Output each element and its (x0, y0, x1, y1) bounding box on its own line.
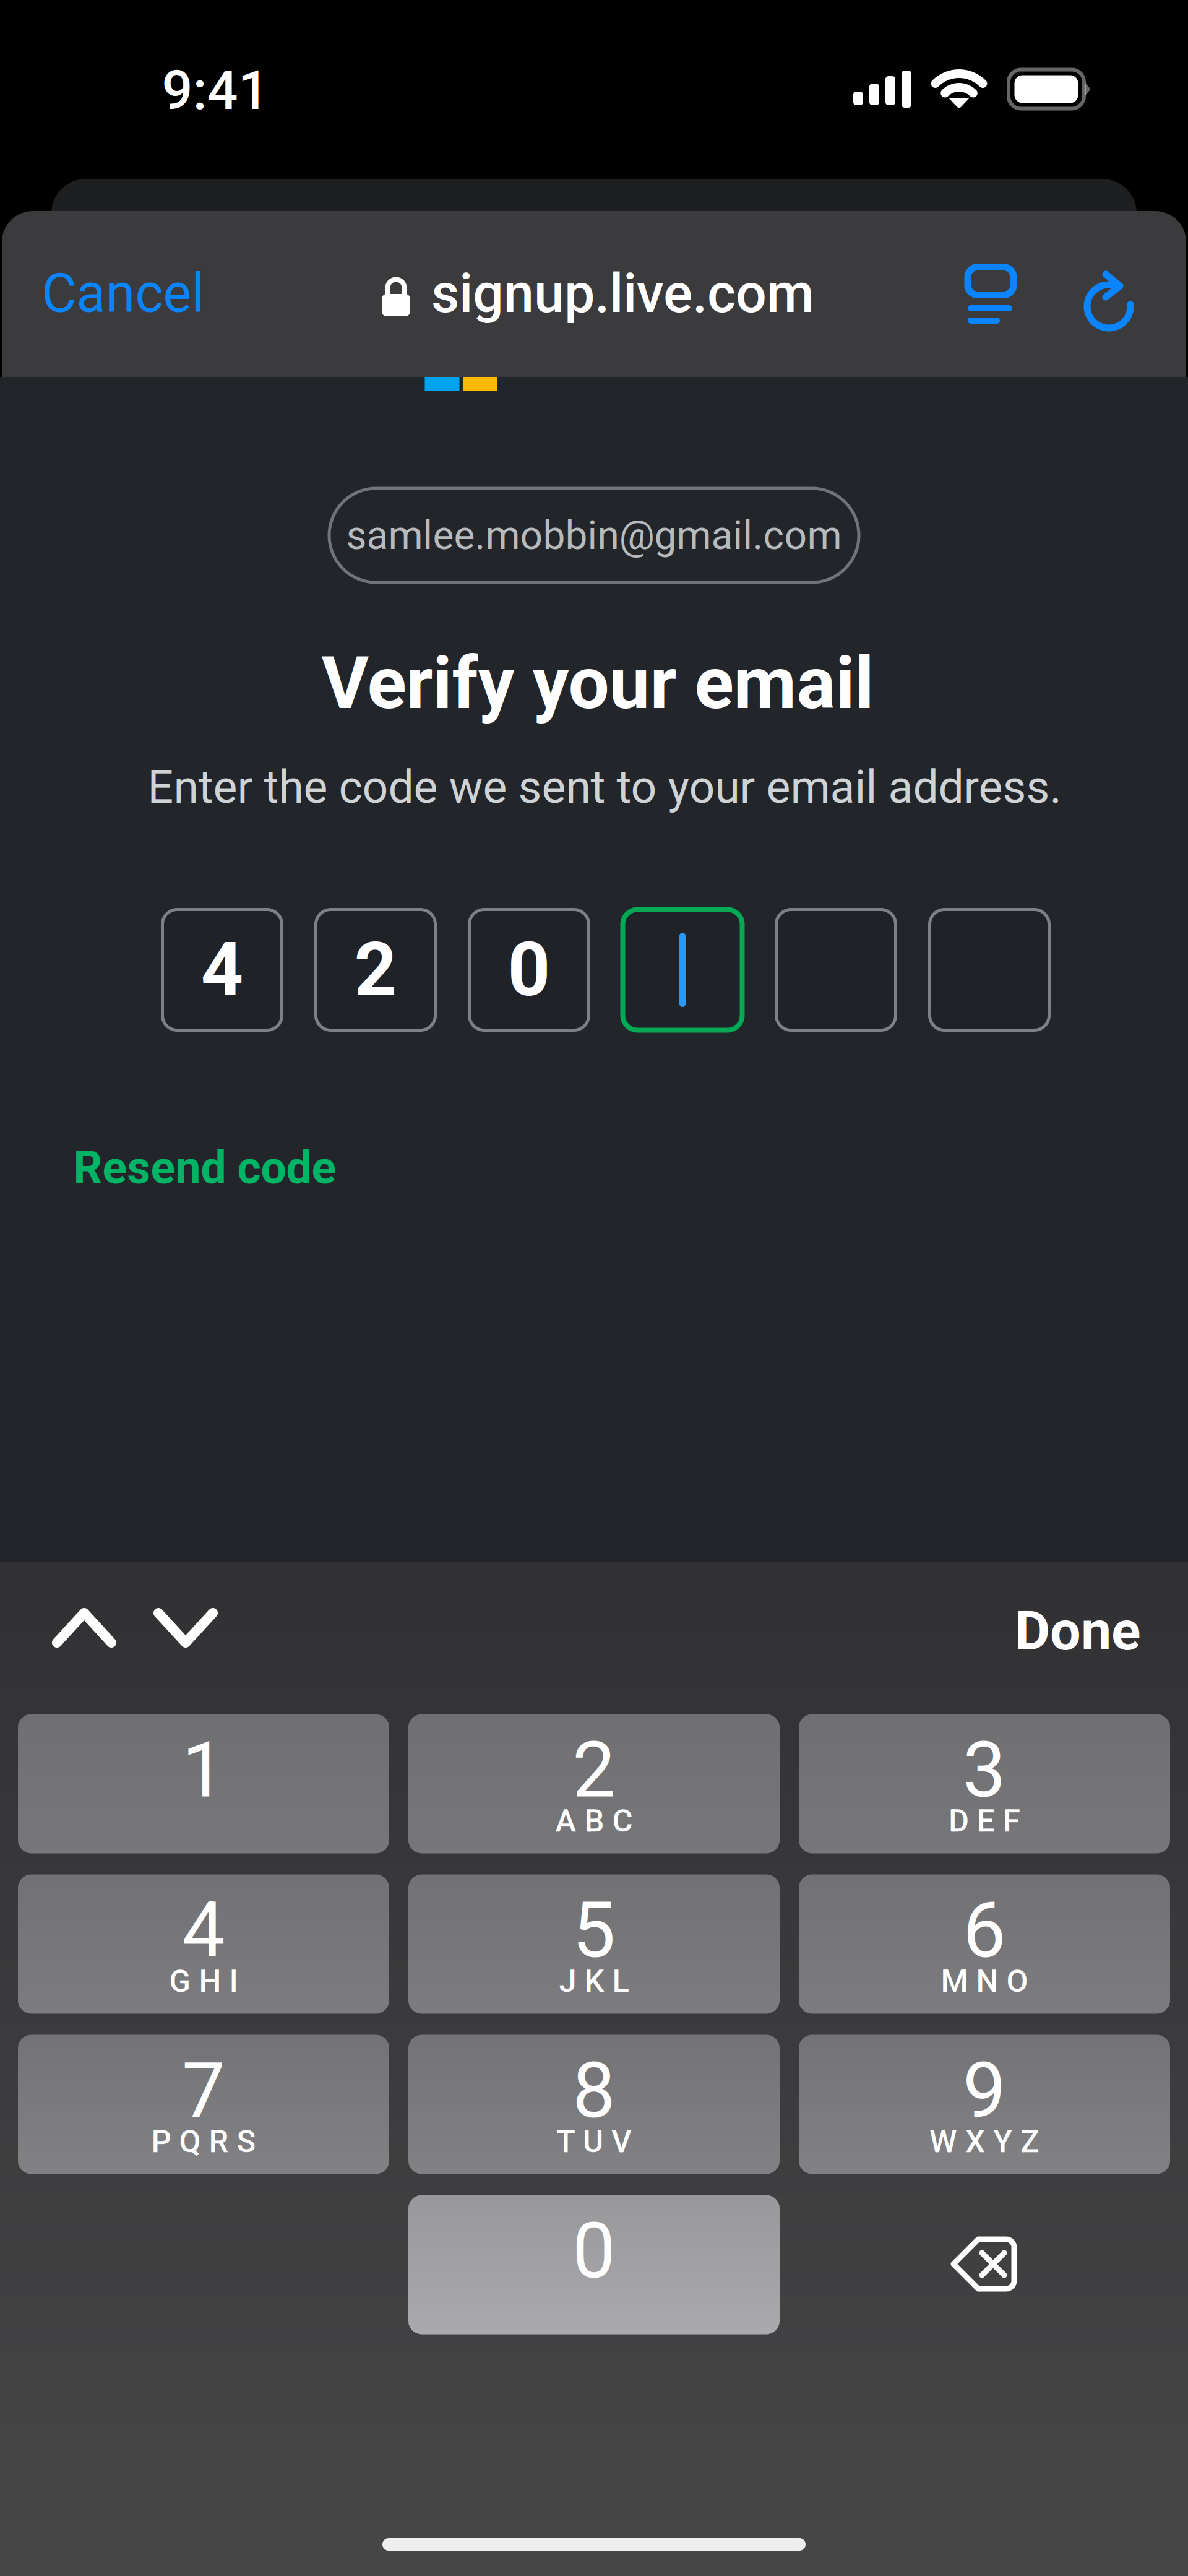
button[interactable]: 2 (408, 1714, 780, 1853)
staticText: 4 (201, 926, 243, 1013)
button[interactable]: 3 (799, 1714, 1170, 1853)
staticText: 2 (354, 926, 397, 1013)
staticText: 0 (572, 2206, 616, 2296)
staticText: 4 (182, 1885, 225, 1975)
button[interactable]: Code digit (930, 910, 1049, 1030)
button[interactable]: Done (999, 1585, 1157, 1676)
button[interactable]: 0 (408, 2195, 780, 2334)
button[interactable]: Code digit (776, 910, 896, 1030)
staticText: A B C (555, 1803, 633, 1839)
staticText: W X Y Z (929, 2123, 1039, 2160)
staticText: 9:41 (162, 58, 269, 122)
staticText: Done (1015, 1599, 1141, 1663)
button[interactable]: 8 (408, 2035, 780, 2174)
staticText: samlee.mobbin@gmail.com (346, 512, 842, 559)
staticText: 2 (572, 1725, 616, 1815)
staticText: 9 (963, 2046, 1006, 2136)
button[interactable]: Page settings (951, 250, 1030, 339)
button[interactable]: Code digit 0 (469, 910, 589, 1030)
button[interactable]: 9 (799, 2035, 1170, 2174)
staticText: signup.live.com (431, 261, 814, 325)
staticText: 1 (182, 1725, 225, 1815)
staticText: T U V (556, 2123, 632, 2160)
staticText: 7 (182, 2046, 225, 2136)
button[interactable]: Code digit (623, 910, 742, 1030)
staticText: 8 (572, 2046, 616, 2136)
button[interactable]: Previous field (38, 1592, 130, 1664)
staticText: Verify your email (321, 641, 874, 726)
staticText: Enter the code we sent to your email add… (148, 761, 1061, 814)
button[interactable]: Code digit 4 (162, 910, 282, 1030)
staticText: Resend code (73, 1141, 336, 1194)
button[interactable]: Reload (1063, 250, 1155, 349)
staticText: G H I (169, 1963, 238, 2000)
button[interactable]: Delete (799, 2195, 1170, 2334)
staticText: P Q R S (151, 2123, 256, 2160)
button[interactable]: 5 (408, 1874, 780, 2014)
staticText: Cancel (42, 262, 204, 325)
button[interactable]: Code digit 2 (316, 910, 435, 1030)
button[interactable]: Resend code (61, 1128, 349, 1208)
staticText: 0 (508, 926, 550, 1013)
staticText: 6 (963, 1885, 1006, 1975)
button[interactable]: 1 (18, 1714, 389, 1853)
staticText: M N O (941, 1963, 1028, 2000)
staticText: J K L (559, 1963, 629, 2000)
staticText: D E F (949, 1803, 1020, 1839)
button[interactable]: 7 (18, 2035, 389, 2174)
staticText: 5 (572, 1885, 616, 1975)
button[interactable]: 6 (799, 1874, 1170, 2014)
button[interactable]: 4 (18, 1874, 389, 2014)
staticText: 3 (963, 1725, 1006, 1815)
button[interactable]: Cancel (26, 245, 221, 342)
button[interactable]: Next field (140, 1592, 231, 1664)
